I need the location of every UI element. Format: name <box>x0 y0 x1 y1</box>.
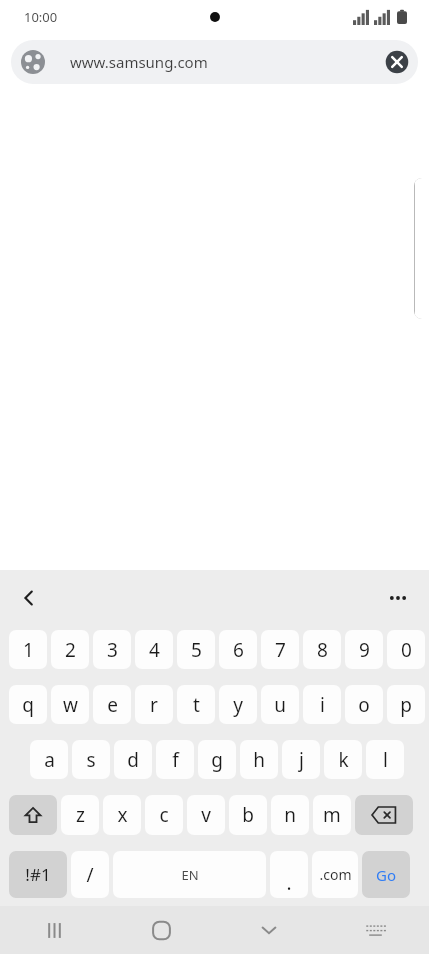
button[interactable]: e <box>93 685 131 724</box>
staticText: 1 <box>23 637 34 663</box>
staticText: . <box>286 870 292 896</box>
button[interactable]: Clear text <box>385 50 409 74</box>
staticText: o <box>358 692 370 718</box>
button[interactable]: w <box>51 685 89 724</box>
button[interactable]: !#1 <box>9 851 67 898</box>
button[interactable]: q <box>9 685 47 724</box>
staticText: j <box>299 747 304 773</box>
button[interactable]: y <box>219 685 257 724</box>
staticText: p <box>400 692 412 718</box>
staticText: 2 <box>65 637 76 663</box>
button[interactable]: Go <box>362 851 410 898</box>
staticText: / <box>86 862 94 888</box>
staticText: EN <box>181 866 199 884</box>
staticText: .com <box>319 865 352 884</box>
staticText: www.samsung.com <box>70 52 208 72</box>
button[interactable]: l <box>366 740 404 779</box>
staticText: 0 <box>401 637 412 663</box>
button[interactable]: t <box>177 685 215 724</box>
button[interactable]: k <box>324 740 362 779</box>
button[interactable]: 8 <box>303 630 341 669</box>
button[interactable]: Recents <box>0 906 108 954</box>
button[interactable]: z <box>61 795 99 835</box>
button[interactable]: Site info <box>21 50 45 74</box>
button[interactable]: c <box>145 795 183 835</box>
staticText: b <box>242 802 254 828</box>
staticText: g <box>211 747 223 773</box>
button[interactable]: More options <box>379 579 417 617</box>
staticText: a <box>44 747 55 773</box>
staticText: 5 <box>191 637 202 663</box>
button[interactable]: Backspace <box>355 795 413 835</box>
staticText: !#1 <box>25 863 51 886</box>
staticText: r <box>150 692 158 718</box>
button[interactable]: b <box>229 795 267 835</box>
button[interactable]: Change keyboard <box>322 906 429 954</box>
button[interactable]: f <box>156 740 194 779</box>
staticText: z <box>76 802 85 828</box>
staticText: h <box>253 747 265 773</box>
staticText: t <box>193 692 200 718</box>
button[interactable]: Site info <box>11 40 418 84</box>
button[interactable]: 3 <box>93 630 131 669</box>
button[interactable]: s <box>72 740 110 779</box>
button[interactable]: 9 <box>345 630 383 669</box>
staticText: f <box>172 747 179 773</box>
button[interactable]: p <box>387 685 425 724</box>
button[interactable]: Back <box>10 579 48 617</box>
staticText: u <box>274 692 286 718</box>
staticText: q <box>22 692 34 718</box>
staticText: i <box>320 692 325 718</box>
staticText: 7 <box>275 637 286 663</box>
button[interactable]: j <box>282 740 320 779</box>
button[interactable]: a <box>30 740 68 779</box>
staticText: w <box>63 692 78 718</box>
button[interactable]: .com <box>312 851 358 898</box>
staticText: e <box>107 692 118 718</box>
staticText: s <box>86 747 96 773</box>
staticText: 4 <box>149 637 160 663</box>
button[interactable]: Space <box>113 851 266 898</box>
button[interactable]: Hide keyboard <box>215 906 322 954</box>
staticText: n <box>284 802 296 828</box>
staticText: Go <box>376 865 396 885</box>
button[interactable]: 0 <box>387 630 425 669</box>
button[interactable]: d <box>114 740 152 779</box>
staticText: 10:00 <box>24 8 58 26</box>
button[interactable]: n <box>271 795 309 835</box>
button[interactable]: h <box>240 740 278 779</box>
button[interactable]: Home <box>108 906 215 954</box>
button[interactable]: Shift <box>9 795 57 835</box>
staticText: d <box>127 747 139 773</box>
staticText: x <box>117 802 128 828</box>
button[interactable]: / <box>71 851 109 898</box>
button[interactable]: r <box>135 685 173 724</box>
staticText: l <box>383 747 388 773</box>
button[interactable]: m <box>313 795 351 835</box>
staticText: 8 <box>317 637 328 663</box>
button[interactable]: 2 <box>51 630 89 669</box>
staticText: m <box>323 802 341 828</box>
button[interactable]: o <box>345 685 383 724</box>
button[interactable]: 4 <box>135 630 173 669</box>
staticText: 3 <box>107 637 118 663</box>
button[interactable]: v <box>187 795 225 835</box>
staticText: y <box>233 692 243 718</box>
button[interactable]: g <box>198 740 236 779</box>
button[interactable]: 7 <box>261 630 299 669</box>
button[interactable]: i <box>303 685 341 724</box>
button[interactable]: 6 <box>219 630 257 669</box>
button[interactable]: u <box>261 685 299 724</box>
staticText: c <box>159 802 169 828</box>
button[interactable]: x <box>103 795 141 835</box>
button[interactable]: 1 <box>9 630 47 669</box>
button[interactable]: . <box>270 851 308 898</box>
staticText: 9 <box>359 637 370 663</box>
staticText: v <box>201 802 211 828</box>
button[interactable]: 5 <box>177 630 215 669</box>
staticText: 6 <box>233 637 244 663</box>
staticText: k <box>338 747 349 773</box>
